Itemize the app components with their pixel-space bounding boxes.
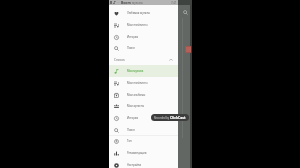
staticText: История <box>127 35 139 39</box>
staticText: ClickCast <box>170 115 186 120</box>
button[interactable]: История <box>109 112 178 124</box>
button[interactable]: Рекомендации <box>109 147 178 159</box>
button[interactable]: Search <box>180 7 190 17</box>
button[interactable]: Поиск <box>109 124 178 136</box>
button[interactable]: Моя музыка <box>109 65 178 77</box>
staticText: Моя музыка <box>127 69 144 73</box>
staticText: Мои артисты <box>127 104 145 108</box>
button[interactable]: Мои артисты <box>109 100 178 112</box>
staticText: 7:41 <box>171 1 177 5</box>
staticText: История <box>127 116 139 120</box>
staticText: Настройки <box>127 163 142 167</box>
staticText: Поиск <box>127 128 135 132</box>
staticText: Поиск <box>127 46 135 50</box>
button[interactable]: Настройки <box>109 159 178 168</box>
button[interactable]: Мои альбомы <box>109 89 178 101</box>
staticText: Любимая музыка <box>127 11 150 15</box>
button[interactable]: Поиск <box>109 42 178 54</box>
button[interactable]: Топ <box>109 135 178 147</box>
button[interactable]: Мои плейлисты <box>109 19 178 31</box>
staticText: Мои плейлисты <box>127 81 148 85</box>
staticText: Мои плейлисты <box>127 23 148 27</box>
staticText: Boom <box>121 0 131 5</box>
staticText: Список <box>114 58 125 62</box>
staticText: Мои альбомы <box>127 93 146 97</box>
staticText: Топ <box>127 139 132 143</box>
staticText: ··· <box>117 1 120 5</box>
button[interactable]: Мои плейлисты <box>109 77 178 89</box>
button[interactable]: История <box>109 31 178 43</box>
button[interactable]: Любимая музыка <box>109 7 178 19</box>
staticText: музыка <box>132 1 143 5</box>
staticText: Рекомендации <box>127 151 147 155</box>
button[interactable]: Список <box>109 54 178 66</box>
staticText: Recorded by <box>154 116 170 120</box>
